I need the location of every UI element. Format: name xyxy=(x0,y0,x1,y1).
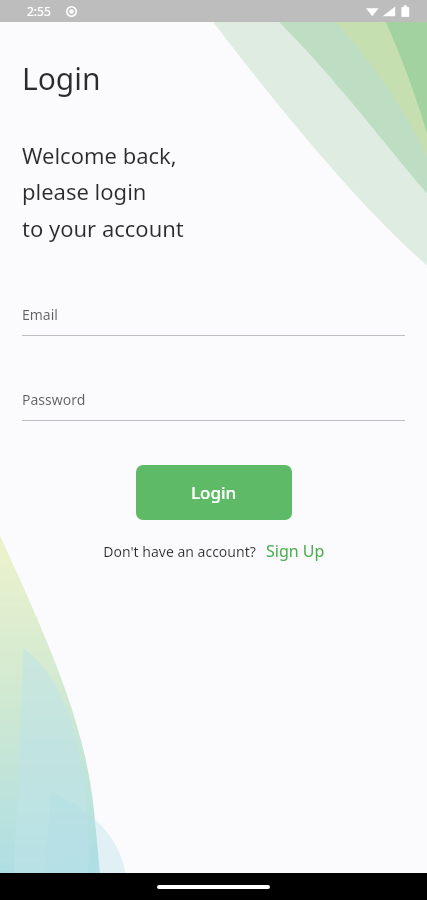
staticText: Email xyxy=(22,305,58,324)
other: Home gesture bar xyxy=(157,885,270,889)
staticText: Password xyxy=(22,390,86,409)
staticText: Don't have an account? xyxy=(103,542,256,561)
staticText: Welcome back, please login to your accou… xyxy=(22,140,184,243)
button[interactable]: Email xyxy=(22,305,405,336)
staticText: Sign Up xyxy=(266,540,325,562)
button[interactable]: Password xyxy=(22,390,405,421)
staticText: 2:55 xyxy=(27,3,51,19)
button[interactable]: Sign Up xyxy=(256,538,325,564)
staticText: Login xyxy=(191,481,237,504)
button[interactable]: Login xyxy=(136,465,292,520)
staticText: Login xyxy=(22,58,101,99)
